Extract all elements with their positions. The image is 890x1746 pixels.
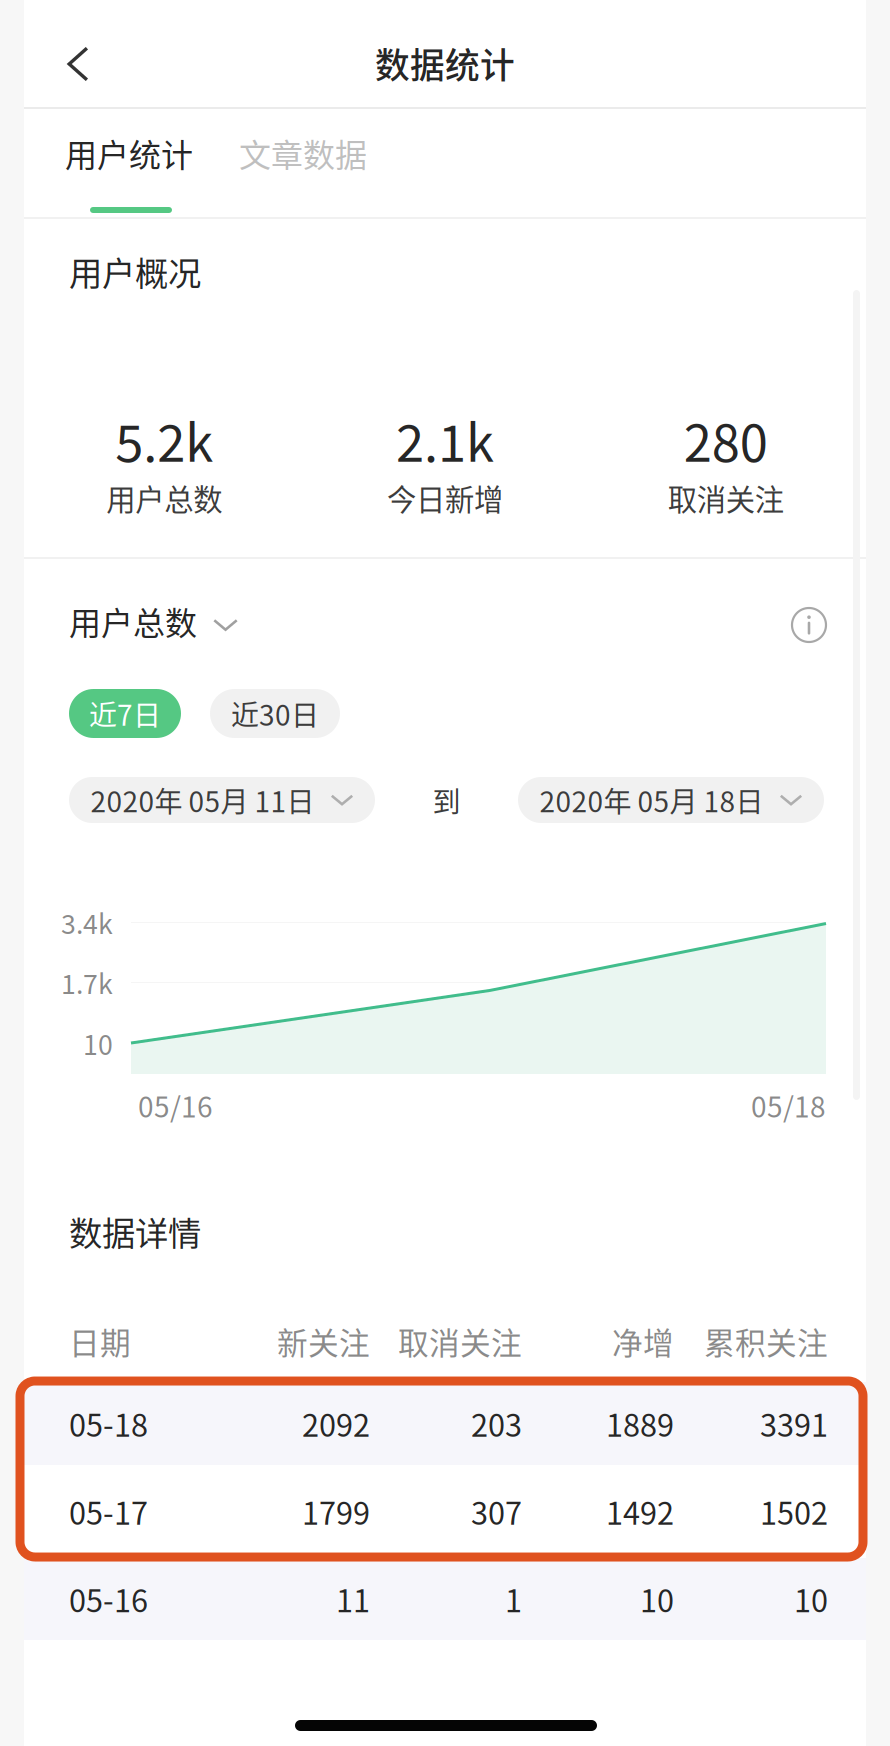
button[interactable]: 近7日 <box>69 689 181 738</box>
staticText: 用户统计 <box>65 130 193 176</box>
button[interactable]: 05-16 <box>24 1558 866 1640</box>
staticText: 文章数据 <box>239 130 367 176</box>
staticText: 280 <box>684 403 768 476</box>
staticText: 日期 <box>69 1319 131 1363</box>
staticText: 2092 <box>302 1401 370 1446</box>
staticText: 05-17 <box>69 1489 148 1534</box>
staticText: 数据详情 <box>69 1207 201 1255</box>
staticText: 1492 <box>606 1489 674 1534</box>
button[interactable]: 文章数据 <box>238 130 368 176</box>
staticText: 10 <box>83 1024 113 1063</box>
staticText: 05-16 <box>69 1577 148 1621</box>
staticText: 1502 <box>760 1489 828 1534</box>
button[interactable]: 05-17 <box>24 1465 866 1558</box>
staticText: 2.1k <box>396 403 494 476</box>
staticText: 1.7k <box>61 963 113 1002</box>
staticText: 用户总数 <box>69 598 197 644</box>
staticText: 1 <box>505 1577 522 1621</box>
staticText: 近7日 <box>89 693 161 734</box>
staticText: 用户总数 <box>106 476 222 519</box>
staticText: 203 <box>471 1401 522 1446</box>
button[interactable]: 返回 <box>24 25 132 103</box>
button[interactable]: 2020年 05月 18日 <box>518 777 824 823</box>
staticText: 10 <box>794 1577 828 1621</box>
staticText: 3391 <box>760 1401 828 1446</box>
staticText: 2020年 05月 18日 <box>539 780 763 820</box>
button[interactable]: 用户统计 <box>64 130 194 176</box>
staticText: 净增 <box>612 1319 674 1363</box>
staticText: 2020年 05月 11日 <box>90 780 314 820</box>
staticText: 1799 <box>302 1489 370 1534</box>
button[interactable]: 2020年 05月 11日 <box>69 777 375 823</box>
button[interactable]: 05-18 <box>24 1382 866 1465</box>
staticText: 05-18 <box>69 1401 148 1446</box>
staticText: 到 <box>432 780 460 820</box>
staticText: 05/18 <box>751 1085 826 1125</box>
staticText: 11 <box>336 1577 370 1621</box>
staticText: 3.4k <box>61 903 113 942</box>
staticText: 取消关注 <box>398 1319 522 1363</box>
staticText: 近30日 <box>231 693 319 734</box>
staticText: 数据统计 <box>375 38 515 88</box>
staticText: 取消关注 <box>668 476 784 519</box>
button[interactable]: 说明 <box>790 606 828 644</box>
staticText: 5.2k <box>115 403 213 476</box>
button[interactable]: 用户总数 <box>69 598 238 644</box>
staticText: 新关注 <box>277 1319 370 1363</box>
staticText: 用户概况 <box>69 247 201 295</box>
staticText: 10 <box>640 1577 674 1621</box>
staticText: 307 <box>471 1489 522 1534</box>
button[interactable]: 近30日 <box>210 689 340 738</box>
staticText: 累积关注 <box>704 1319 828 1363</box>
staticText: 1889 <box>606 1401 674 1446</box>
staticText: 05/16 <box>138 1085 213 1125</box>
staticText: 今日新增 <box>387 476 503 519</box>
